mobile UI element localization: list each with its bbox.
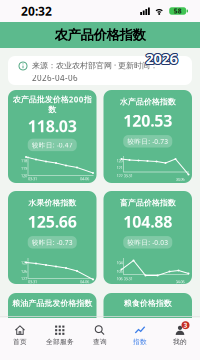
button[interactable]: 畜产品价格指数: [103, 191, 192, 284]
staticText: 3: [183, 321, 187, 330]
staticText: 2026-04-06: [32, 73, 78, 83]
button[interactable]: 水产品价格指数: [103, 90, 192, 183]
staticText: 2026: [146, 48, 178, 68]
button[interactable]: 首页: [0, 317, 40, 353]
staticText: 来源：农业农村部官网 · 更新时间：: [32, 60, 158, 71]
staticText: 105: [116, 269, 122, 274]
staticText: 104: [116, 260, 122, 265]
staticText: 119: [21, 166, 27, 171]
staticText: 2026: [145, 49, 177, 69]
staticText: 水果价格指数: [28, 198, 76, 208]
button[interactable]: 指数: [120, 317, 160, 353]
button[interactable]: 农产品批发价格200指: [8, 90, 96, 183]
staticText: 118: [21, 158, 27, 163]
button[interactable]: 粮食价格指数: [103, 293, 192, 318]
staticText: 122: [116, 173, 122, 178]
staticText: 粮油产品批发价格指数: [12, 298, 92, 308]
staticText: 104.88: [123, 211, 172, 232]
staticText: 农产品价格指数: [54, 27, 145, 43]
staticText: 03-31: [28, 279, 37, 284]
staticText: 首页: [13, 338, 27, 346]
staticText: 2026: [145, 47, 177, 67]
button[interactable]: 粮油产品批发价格指数: [8, 293, 96, 318]
staticText: 120: [21, 173, 27, 178]
staticText: 20:32: [21, 3, 52, 19]
staticText: 120.53: [123, 110, 172, 131]
staticText: 126: [21, 269, 27, 274]
staticText: 水产品价格指数: [120, 97, 176, 107]
button[interactable]: 全部服务: [40, 317, 80, 353]
staticText: 较昨日: -0.73: [32, 238, 73, 247]
staticText: 2026: [146, 48, 178, 67]
staticText: 畜产品价格指数: [120, 198, 176, 208]
button[interactable]: 查询: [80, 317, 120, 353]
staticText: 121: [116, 165, 122, 170]
staticText: 04-06: [175, 177, 184, 182]
button[interactable]: 3: [160, 317, 200, 353]
staticText: 2026: [145, 49, 177, 69]
staticText: 03-31: [28, 176, 37, 181]
staticText: 04-06: [80, 176, 89, 181]
staticText: 125.66: [28, 211, 77, 232]
staticText: 125: [21, 260, 27, 265]
staticText: 120: [116, 158, 122, 163]
staticText: 查询: [93, 338, 107, 346]
staticText: 2026: [146, 49, 178, 69]
staticText: 粮食价格指数: [124, 298, 172, 308]
button[interactable]: 水果价格指数: [8, 191, 96, 284]
staticText: 04-06: [175, 279, 184, 284]
staticText: 127: [21, 276, 27, 281]
staticText: 较昨日: -0.03: [127, 238, 168, 247]
staticText: 118.03: [28, 115, 77, 137]
staticText: 全部服务: [46, 338, 74, 346]
staticText: 较昨日: -0.73: [127, 137, 168, 146]
staticText: 我的: [173, 338, 187, 346]
staticText: 数: [48, 105, 56, 114]
staticText: 指数: [133, 338, 147, 346]
staticText: 04-06: [80, 279, 89, 284]
staticText: 2026: [145, 48, 177, 68]
staticText: 106: [116, 276, 122, 281]
staticText: 03-31: [123, 173, 132, 178]
staticText: 03-31: [123, 276, 132, 281]
staticText: 较昨日: -0.47: [32, 140, 73, 149]
staticText: 农产品批发价格200指: [13, 94, 92, 105]
staticText: 2026: [145, 48, 177, 67]
staticText: 2026: [144, 48, 176, 68]
staticText: 58: [174, 7, 182, 15]
button[interactable]: 来源：农业农村部官网 · 更新时间：: [8, 56, 192, 85]
